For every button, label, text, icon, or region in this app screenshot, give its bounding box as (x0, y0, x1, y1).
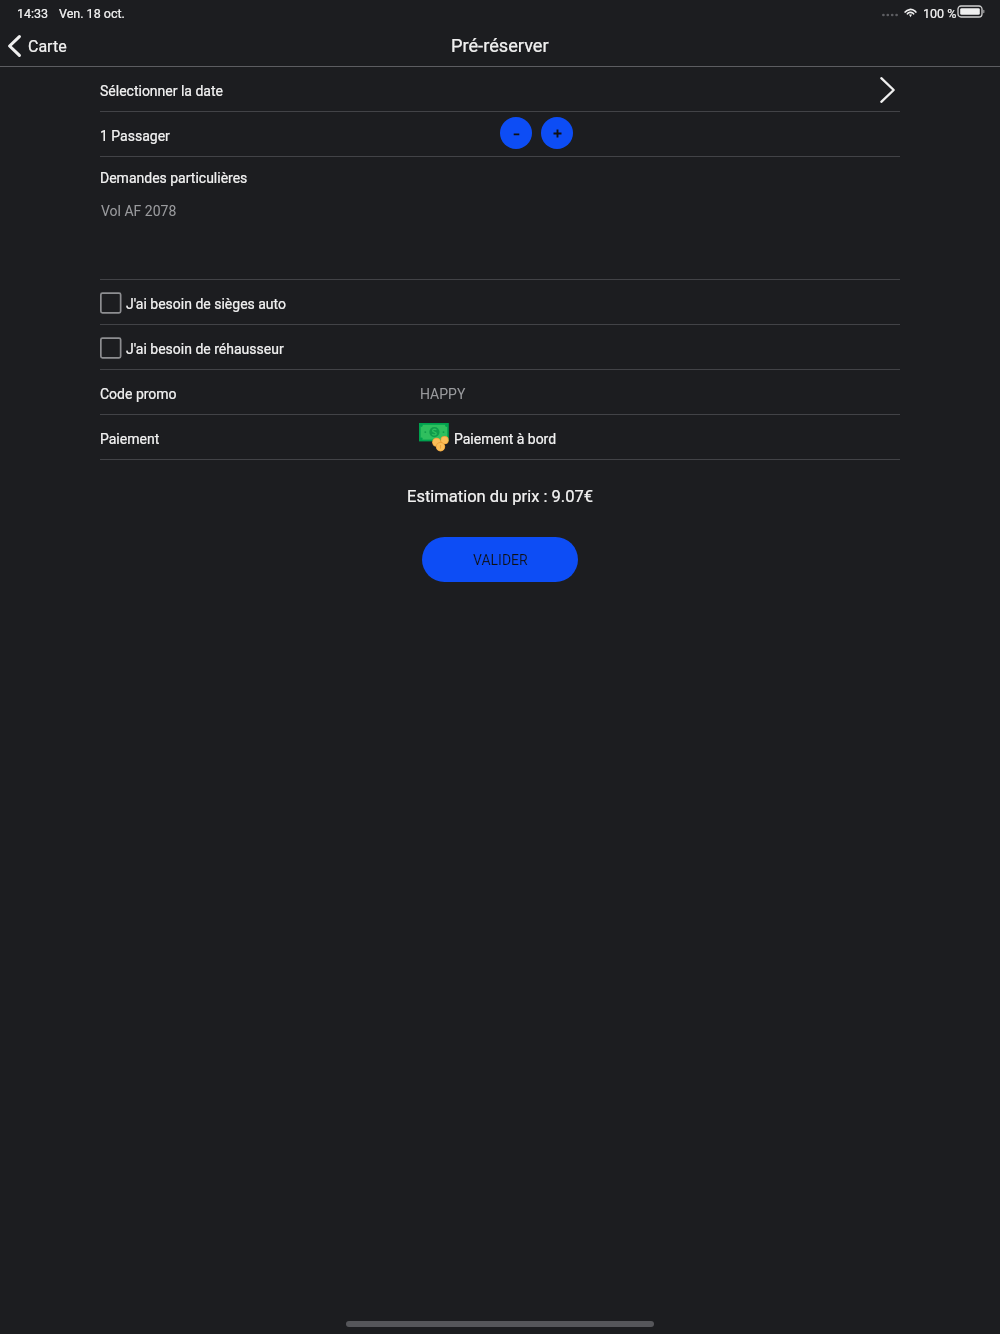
button[interactable]: VALIDER (422, 537, 578, 582)
button[interactable]: Code promo (100, 370, 900, 415)
button[interactable]: J'ai besoin de réhausseur (100, 325, 900, 370)
staticText: Paiement à bord (454, 431, 557, 447)
button[interactable]: Remove passenger (500, 117, 532, 149)
staticText: J'ai besoin de réhausseur (126, 341, 284, 357)
staticText: 14:33 (17, 6, 49, 21)
staticText: Code promo (100, 386, 177, 402)
staticText: VALIDER (473, 552, 528, 568)
staticText: Paiement (100, 431, 160, 447)
staticText: 100 % (923, 6, 957, 21)
staticText: Vol AF 2078 (101, 203, 177, 219)
staticText: Sélectionner la date (100, 83, 223, 99)
staticText: Carte (28, 37, 67, 56)
button[interactable]: Add passenger (541, 117, 573, 149)
button[interactable]: Sélectionner la date (100, 67, 900, 112)
button[interactable]: Paiement (100, 415, 900, 460)
staticText: Estimation du prix : 9.07€ (100, 487, 900, 506)
other: Choose date (880, 77, 895, 103)
staticText: Demandes particulières (100, 170, 248, 186)
staticText: HAPPY (420, 386, 466, 402)
staticText: 1 Passager (100, 128, 170, 144)
button[interactable]: Carte (0, 31, 77, 61)
button[interactable]: J'ai besoin de sièges auto (100, 280, 900, 325)
staticText: Pré-réserver (451, 35, 549, 56)
staticText: Ven. 18 oct. (59, 6, 125, 21)
staticText: J'ai besoin de sièges auto (126, 296, 287, 312)
button[interactable]: Demandes particulières (100, 157, 900, 280)
